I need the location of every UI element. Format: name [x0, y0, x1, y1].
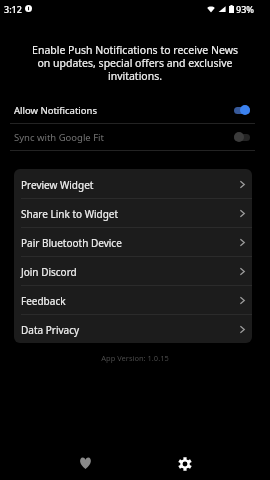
- staticText: Join Discord: [21, 265, 77, 279]
- button[interactable]: Share Link to Widget: [14, 198, 252, 227]
- staticText: Preview Widget: [21, 178, 94, 192]
- button[interactable]: Sync with Google Fit: [0, 124, 270, 150]
- staticText: App Version: 1.0.15: [0, 353, 270, 363]
- staticText: Allow Notifications: [14, 104, 97, 117]
- button[interactable]: Preview Widget: [14, 169, 252, 198]
- staticText: 3:12: [4, 3, 22, 15]
- staticText: Data Privacy: [21, 323, 80, 337]
- staticText: Pair Bluetooth Device: [21, 236, 122, 250]
- button[interactable]: Settings: [171, 450, 199, 478]
- staticText: Feedback: [21, 294, 66, 308]
- button[interactable]: Pair Bluetooth Device: [14, 227, 252, 256]
- button[interactable]: Allow Notifications: [0, 97, 270, 123]
- button[interactable]: Feedback: [14, 285, 252, 314]
- button[interactable]: Favorites: [71, 449, 99, 477]
- staticText: Sync with Google Fit: [14, 131, 104, 144]
- staticText: Share Link to Widget: [21, 207, 119, 221]
- button[interactable]: Data Privacy: [14, 314, 252, 343]
- button[interactable]: Join Discord: [14, 256, 252, 285]
- staticText: Enable Push Notifications to receive New…: [0, 43, 270, 83]
- staticText: 93%: [236, 3, 254, 15]
